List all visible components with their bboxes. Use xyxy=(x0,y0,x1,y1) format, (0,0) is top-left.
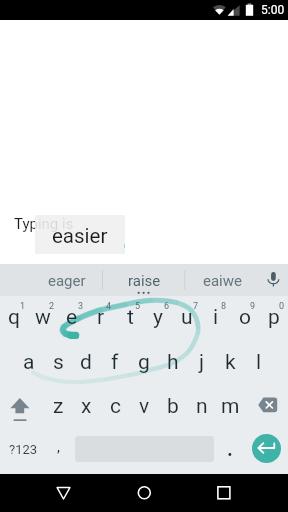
button[interactable]: Backspace xyxy=(245,384,288,428)
staticText: l xyxy=(256,350,262,375)
button[interactable] xyxy=(71,340,100,384)
staticText: 1 xyxy=(20,301,26,312)
button[interactable] xyxy=(172,296,201,340)
staticText: 6 xyxy=(164,301,170,312)
button[interactable] xyxy=(129,340,158,384)
button[interactable] xyxy=(216,384,245,428)
button[interactable] xyxy=(14,340,42,384)
button[interactable] xyxy=(216,428,245,472)
staticText: i xyxy=(213,305,219,330)
button[interactable]: Home xyxy=(120,474,168,512)
staticText: x xyxy=(81,394,92,419)
button[interactable] xyxy=(42,340,71,384)
button[interactable] xyxy=(143,296,172,340)
button[interactable] xyxy=(100,384,129,428)
button[interactable]: Shift xyxy=(0,384,42,428)
button[interactable] xyxy=(56,296,85,340)
button[interactable] xyxy=(158,384,187,428)
staticText: 3 xyxy=(78,301,84,312)
button[interactable]: Recent apps xyxy=(200,474,248,512)
button[interactable]: Symbols xyxy=(0,428,43,472)
staticText: easier xyxy=(52,224,108,248)
button[interactable]: Back xyxy=(40,474,88,512)
button[interactable] xyxy=(71,384,100,428)
staticText: 7 xyxy=(193,301,199,312)
staticText: n xyxy=(196,394,208,419)
staticText: 2 xyxy=(49,301,55,312)
staticText: z xyxy=(53,394,64,419)
staticText: j xyxy=(199,350,205,375)
staticText: u xyxy=(181,305,193,330)
button[interactable] xyxy=(28,296,56,340)
staticText: f xyxy=(111,350,119,375)
button[interactable] xyxy=(100,340,129,384)
staticText: s xyxy=(53,350,64,375)
button[interactable] xyxy=(114,296,143,340)
button[interactable] xyxy=(25,264,103,296)
button[interactable]: Enter xyxy=(245,428,288,472)
staticText: r xyxy=(97,305,105,330)
button[interactable] xyxy=(42,384,71,428)
staticText: k xyxy=(225,350,236,375)
staticText: 8 xyxy=(221,301,227,312)
button[interactable] xyxy=(0,296,28,340)
button[interactable] xyxy=(201,296,230,340)
staticText: m xyxy=(221,394,240,419)
staticText: eaiwe xyxy=(203,272,242,290)
button[interactable] xyxy=(85,296,114,340)
button[interactable] xyxy=(187,384,216,428)
button[interactable] xyxy=(259,296,288,340)
staticText: 0 xyxy=(279,301,285,312)
button[interactable]: Voice input xyxy=(255,264,288,296)
staticText: b xyxy=(167,394,179,419)
staticText: t xyxy=(127,305,134,330)
staticText: a xyxy=(23,350,35,375)
staticText: e xyxy=(66,305,78,330)
staticText: h xyxy=(167,350,179,375)
button[interactable]: easier xyxy=(35,215,125,254)
staticText: y xyxy=(153,305,163,330)
staticText: ?123 xyxy=(9,442,38,457)
staticText: , xyxy=(57,438,60,456)
staticText: q xyxy=(8,305,20,330)
button[interactable] xyxy=(216,340,245,384)
button[interactable] xyxy=(129,384,158,428)
staticText: c xyxy=(110,394,121,419)
staticText: o xyxy=(239,305,251,330)
staticText: raise xyxy=(128,272,161,290)
button[interactable] xyxy=(158,340,187,384)
button[interactable] xyxy=(185,264,253,296)
button[interactable] xyxy=(245,340,274,384)
staticText: 5 xyxy=(135,301,141,312)
button[interactable]: Space xyxy=(72,428,216,472)
staticText: g xyxy=(138,350,150,375)
button[interactable] xyxy=(230,296,259,340)
staticText: d xyxy=(80,350,92,375)
button[interactable] xyxy=(187,340,216,384)
staticText: 4 xyxy=(106,301,112,312)
staticText: 5:00 xyxy=(261,3,285,17)
staticText: 9 xyxy=(250,301,256,312)
staticText: w xyxy=(35,305,51,330)
staticText: eager xyxy=(48,272,86,290)
button[interactable] xyxy=(43,428,72,472)
staticText: p xyxy=(268,305,280,330)
button[interactable] xyxy=(103,264,185,296)
staticText: v xyxy=(139,394,150,419)
staticText: Typing is xyxy=(14,215,74,233)
